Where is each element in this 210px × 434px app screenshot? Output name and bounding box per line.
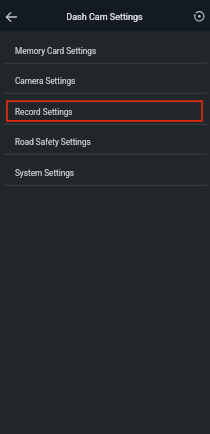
staticText: Record Settings: [15, 107, 73, 117]
button[interactable]: Road Safety Settings: [0, 125, 210, 155]
button[interactable]: Reset to defaults: [184, 0, 210, 30]
button[interactable]: Camera Settings: [0, 64, 210, 94]
button[interactable]: System Settings: [0, 155, 210, 186]
staticText: System Settings: [15, 168, 75, 178]
staticText: Road Safety Settings: [15, 137, 91, 147]
staticText: Dash Cam Settings: [66, 12, 143, 23]
staticText: Memory Card Settings: [15, 46, 97, 56]
button[interactable]: Back: [0, 0, 26, 30]
staticText: Camera Settings: [15, 76, 76, 86]
button[interactable]: Record Settings: [0, 94, 210, 125]
button[interactable]: Memory Card Settings: [0, 33, 210, 64]
